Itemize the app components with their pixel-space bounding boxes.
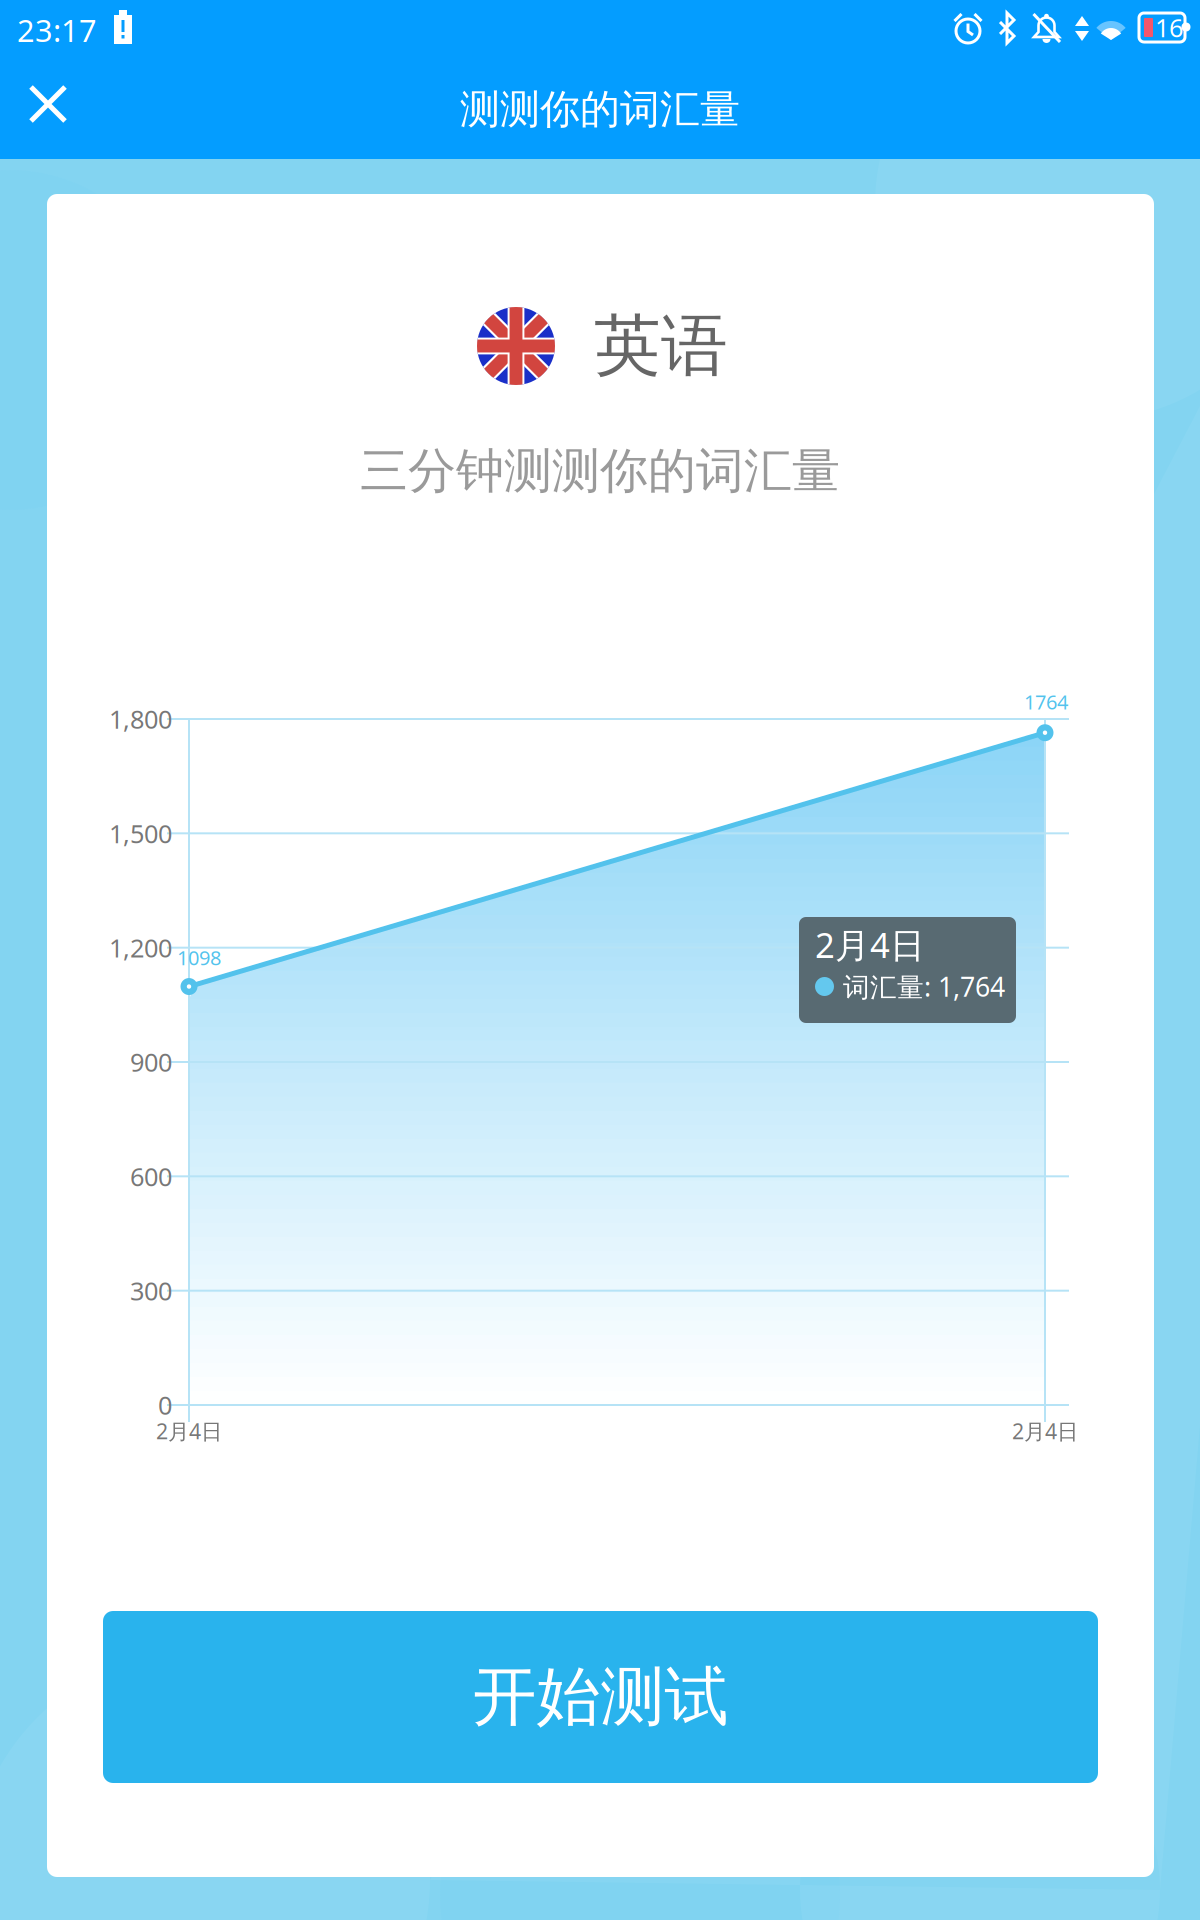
staticText: 1098 [177, 944, 221, 971]
button[interactable]: 开始测试 [103, 1611, 1098, 1783]
staticText: 开始测试 [472, 1658, 728, 1736]
staticText: 16 [1155, 11, 1183, 44]
staticText: 2月4日 [156, 1417, 222, 1445]
staticText: 1,500 [109, 816, 172, 850]
staticText: 23:17 [17, 10, 97, 50]
staticText: 1,800 [109, 702, 172, 736]
staticText: 词汇量: 1,764 [843, 969, 1005, 1004]
staticText: 2月4日 [815, 921, 925, 967]
staticText: 900 [130, 1045, 172, 1079]
staticText: 2月4日 [1012, 1417, 1078, 1445]
button[interactable]: Close [10, 66, 86, 142]
staticText: 300 [130, 1274, 172, 1307]
staticText: 1,200 [109, 931, 172, 964]
staticText: 600 [130, 1159, 172, 1193]
staticText: 测测你的词汇量 [460, 85, 740, 134]
staticText: 三分钟测测你的词汇量 [360, 441, 840, 500]
staticText: 0 [158, 1388, 172, 1422]
staticText: 1764 [1024, 688, 1068, 715]
staticText: 英语 [594, 305, 728, 387]
